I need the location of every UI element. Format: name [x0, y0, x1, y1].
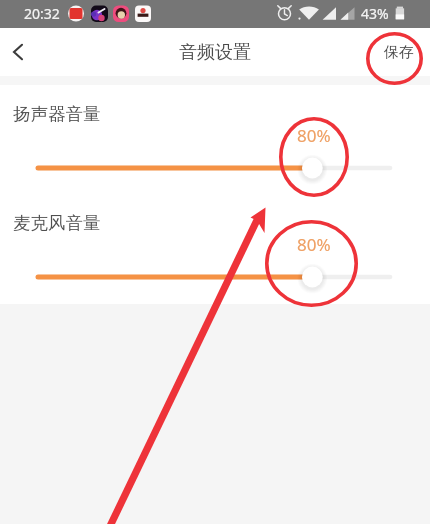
staticText: 保存	[384, 43, 414, 62]
staticText: 20:32	[24, 4, 60, 23]
button[interactable]: Back	[0, 28, 40, 76]
button[interactable]: 保存	[368, 28, 430, 76]
staticText: 43%	[361, 4, 389, 23]
staticText: 麦克风音量	[13, 212, 101, 234]
staticText: 音频设置	[179, 41, 251, 64]
staticText: 80%	[297, 124, 331, 147]
staticText: 80%	[297, 233, 331, 256]
button[interactable]: 麦克风音量 80 percent	[30, 259, 400, 295]
staticText: 扬声器音量	[13, 103, 101, 125]
button[interactable]: 扬声器音量 80 percent	[30, 150, 400, 186]
